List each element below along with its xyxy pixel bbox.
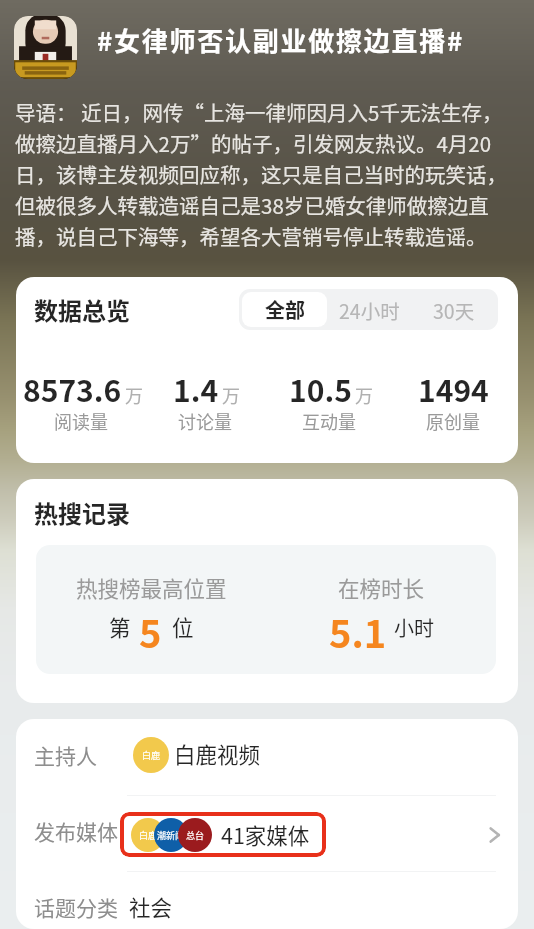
staticText: 第 xyxy=(109,611,131,642)
staticText: 位 xyxy=(172,611,194,642)
staticText: 话题分类 xyxy=(34,892,118,922)
staticText: 原创量 xyxy=(426,408,480,434)
staticText: 41家媒体 xyxy=(221,819,310,850)
button[interactable]: Author avatar xyxy=(14,16,77,79)
staticText: 总台 xyxy=(186,829,205,842)
button[interactable]: 24小时 xyxy=(327,292,412,327)
staticText: 1494 xyxy=(418,367,489,410)
staticText: 小时 xyxy=(394,613,434,642)
button[interactable]: 话题分类 xyxy=(34,869,500,929)
button[interactable]: 全部 xyxy=(242,292,327,327)
staticText: 10.5 xyxy=(289,367,352,410)
button[interactable]: 30天 xyxy=(412,292,495,327)
staticText: 导语： 近日，网传“上海一律师因月入5千无法生存，做擦边直播月入2万”的帖子，引… xyxy=(15,96,522,251)
staticText: 24小时 xyxy=(339,296,400,324)
staticText: 互动量 xyxy=(302,408,356,434)
staticText: 白鹿 xyxy=(139,829,158,842)
staticText: 数据总览 xyxy=(34,292,130,327)
staticText: 万 xyxy=(355,382,373,408)
staticText: 发布媒体 xyxy=(34,816,118,846)
staticText: 热搜记录 xyxy=(34,495,130,530)
staticText: 讨论量 xyxy=(178,408,232,434)
staticText: 潮新闻 xyxy=(157,829,185,842)
staticText: #女律师否认副业做擦边直播# xyxy=(97,21,465,59)
staticText: 万 xyxy=(222,382,240,408)
staticText: 白鹿 xyxy=(142,749,161,762)
staticText: 5.1 xyxy=(329,604,387,659)
button[interactable]: 主持人 xyxy=(34,719,500,793)
button[interactable]: 发布媒体 xyxy=(34,793,500,869)
staticText: 30天 xyxy=(433,296,475,324)
staticText: 热搜榜最高位置 xyxy=(76,572,227,603)
other: More media xyxy=(483,824,505,846)
staticText: 万 xyxy=(125,382,143,408)
staticText: 社会 xyxy=(129,891,173,922)
staticText: 白鹿视频 xyxy=(174,738,261,769)
staticText: 阅读量 xyxy=(54,408,108,434)
staticText: 全部 xyxy=(265,295,305,324)
staticText: 1.4 xyxy=(173,367,219,410)
staticText: 在榜时长 xyxy=(338,572,425,603)
staticText: 5 xyxy=(139,604,162,659)
staticText: 主持人 xyxy=(34,740,97,770)
staticText: 8573.6 xyxy=(23,367,122,410)
